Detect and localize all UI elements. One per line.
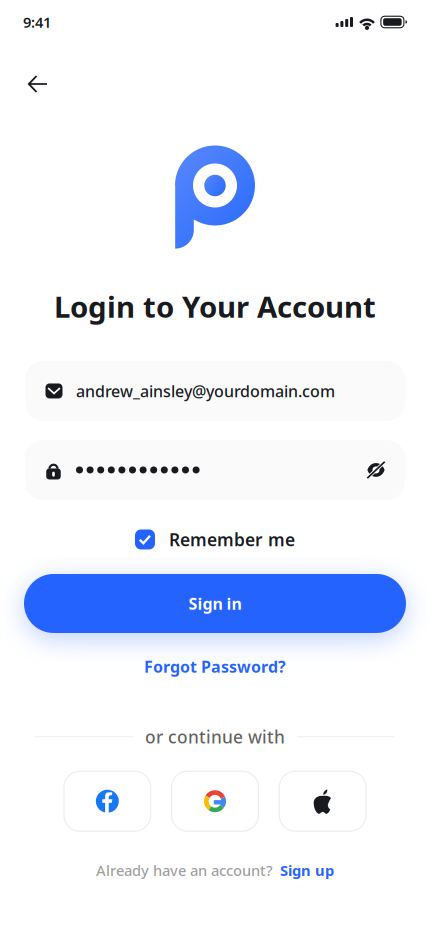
- button[interactable]: Sign in: [0, 574, 430, 633]
- button[interactable]: Show password: [367, 462, 385, 478]
- staticText: andrew_ainsley@yourdomain.com: [76, 380, 335, 401]
- staticText: or continue with: [145, 725, 285, 748]
- button[interactable]: Forgot Password?: [138, 650, 292, 683]
- staticText: 9:41: [23, 12, 51, 32]
- staticText: Forgot Password?: [144, 656, 286, 677]
- staticText: Sign up: [280, 860, 334, 880]
- staticText: Already have an account?: [96, 860, 273, 880]
- staticText: Sign in: [188, 593, 241, 614]
- button[interactable]: Continue with Apple: [279, 771, 366, 831]
- button[interactable]: Continue with Google: [172, 771, 258, 831]
- staticText: Remember me: [169, 528, 295, 551]
- staticText: Login to Your Account: [54, 287, 376, 326]
- button[interactable]: Continue with Facebook: [64, 771, 151, 831]
- button[interactable]: Remember me: [127, 520, 303, 559]
- button[interactable]: Back: [16, 62, 60, 106]
- button[interactable]: Sign up: [280, 860, 334, 880]
